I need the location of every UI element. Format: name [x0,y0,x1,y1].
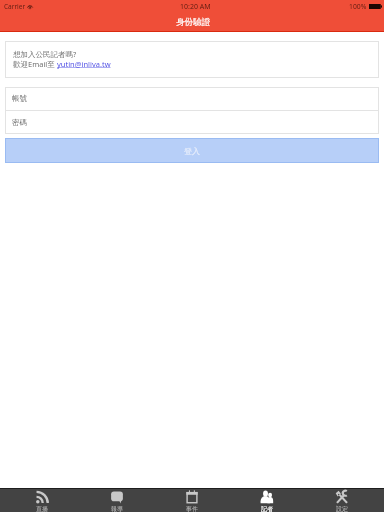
staticText: 100% [349,2,367,11]
staticText: 設定 [336,505,348,512]
staticText: 記者 [261,505,273,512]
button[interactable]: 記者 [229,489,304,512]
button[interactable]: yutin@inliva.tw [57,59,111,69]
button[interactable]: 密碼 [5,111,379,134]
staticText: 報導 [111,505,123,512]
staticText: Carrier [4,2,26,11]
staticText: 密碼 [12,118,27,127]
staticText: 10:20 AM [180,2,211,12]
button[interactable]: 設定 [304,489,379,512]
staticText: 歡迎Email至 [13,59,57,69]
button[interactable]: 直播 [5,489,79,512]
staticText: 直播 [36,505,48,512]
staticText: 帳號 [12,94,27,103]
button[interactable]: 登入 [5,138,379,163]
staticText: 身份驗證 [176,17,211,28]
staticText: 事件 [186,505,198,512]
staticText: 想加入公民記者嗎? [13,49,77,59]
button[interactable]: 帳號 [5,87,379,110]
staticText: 登入 [184,146,200,156]
button[interactable]: 事件 [154,489,229,512]
button[interactable]: 報導 [79,489,154,512]
